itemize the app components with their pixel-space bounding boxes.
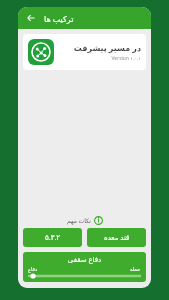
button[interactable]: در مسیر پیشرفت	[23, 34, 146, 70]
button[interactable]: نکات مهم	[18, 213, 151, 228]
staticText: حمله	[130, 266, 141, 272]
staticText: ۵.۳.۲	[45, 233, 61, 243]
staticText: ترکیب ها	[44, 13, 74, 24]
button[interactable]: Back	[24, 11, 38, 25]
staticText: در مسیر پیشرفت	[73, 42, 141, 53]
staticText: Version ۱.۰.۱	[111, 55, 141, 62]
staticText: قند معده	[104, 233, 130, 243]
button[interactable]: دفاع سقفی	[23, 252, 146, 282]
staticText: دفاع	[28, 266, 38, 272]
staticText: نکات مهم	[67, 217, 91, 225]
button[interactable]: قند معده	[87, 228, 146, 247]
button[interactable]: Balance slider	[28, 273, 141, 279]
button[interactable]: ۵.۳.۲	[23, 228, 82, 247]
staticText: دفاع سقفی	[28, 255, 141, 265]
